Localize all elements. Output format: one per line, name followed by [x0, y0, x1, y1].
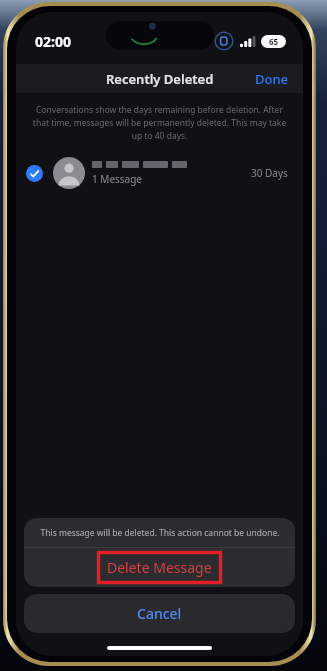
- staticText: 30 Days: [251, 166, 288, 180]
- button[interactable]: Selected: [16, 150, 303, 196]
- staticText: 65: [269, 36, 279, 47]
- button[interactable]: Done: [241, 65, 303, 93]
- staticText: This message will be deleted. This actio…: [40, 527, 280, 539]
- staticText: Delete Message: [107, 558, 212, 577]
- staticText: Conversations show the days remaining be…: [32, 104, 287, 142]
- other: Selected: [26, 165, 43, 182]
- other: Focus mode: [214, 31, 234, 51]
- staticText: 02:00: [35, 32, 71, 51]
- button[interactable]: Delete Message: [24, 548, 295, 587]
- staticText: 1 Message: [92, 172, 143, 186]
- button[interactable]: Cancel: [24, 594, 295, 633]
- staticText: Recently Deleted: [106, 70, 214, 88]
- staticText: Cancel: [137, 604, 182, 623]
- staticText: Done: [255, 70, 289, 88]
